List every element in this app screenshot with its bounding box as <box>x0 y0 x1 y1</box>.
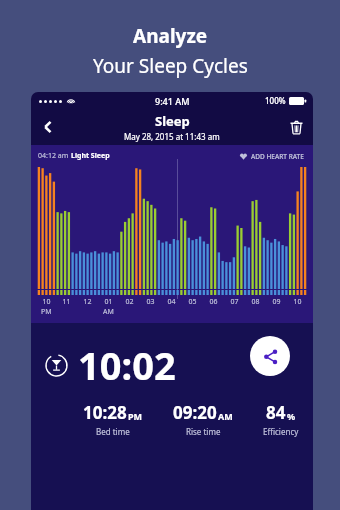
staticText: 03 <box>146 297 155 307</box>
button[interactable]: Back <box>31 109 65 145</box>
staticText: 10:28 <box>83 401 127 424</box>
staticText: AM <box>218 410 233 422</box>
button[interactable]: ADD HEART RATE <box>238 152 306 161</box>
staticText: 10 <box>42 297 51 307</box>
staticText: 07 <box>230 297 239 307</box>
staticText: 12 <box>83 297 92 307</box>
staticText: Light Sleep <box>71 151 110 161</box>
staticText: 08 <box>251 297 260 307</box>
staticText: 09:20 <box>173 401 217 424</box>
staticText: 04:12 am <box>38 151 71 161</box>
staticText: 06 <box>209 297 218 307</box>
staticText: 01 <box>104 297 113 307</box>
staticText: Efficiency <box>263 426 299 437</box>
staticText: May 28, 2015 at 11:43 am <box>124 131 220 142</box>
button[interactable]: Delete <box>279 109 313 145</box>
staticText: % <box>287 410 296 422</box>
staticText: Rise time <box>186 426 221 437</box>
staticText: 02 <box>125 297 134 307</box>
staticText: PM <box>41 307 52 317</box>
staticText: 11 <box>62 297 71 307</box>
staticText: 100% <box>265 95 286 106</box>
staticText: Sleep <box>155 112 190 130</box>
staticText: 84 <box>266 401 286 424</box>
staticText: Analyze <box>133 23 208 49</box>
staticText: Your Sleep Cycles <box>93 53 248 79</box>
staticText: 10:02 <box>78 339 176 391</box>
staticText: 10 <box>293 297 302 307</box>
staticText: Bed time <box>96 426 130 437</box>
staticText: 09 <box>272 297 281 307</box>
staticText: PM <box>128 410 143 422</box>
staticText: ADD HEART RATE <box>251 152 304 161</box>
staticText: AM <box>103 307 114 317</box>
staticText: 05 <box>188 297 197 307</box>
staticText: 9:41 AM <box>155 95 190 107</box>
staticText: 04 <box>167 297 176 307</box>
button[interactable]: Share <box>250 336 290 376</box>
